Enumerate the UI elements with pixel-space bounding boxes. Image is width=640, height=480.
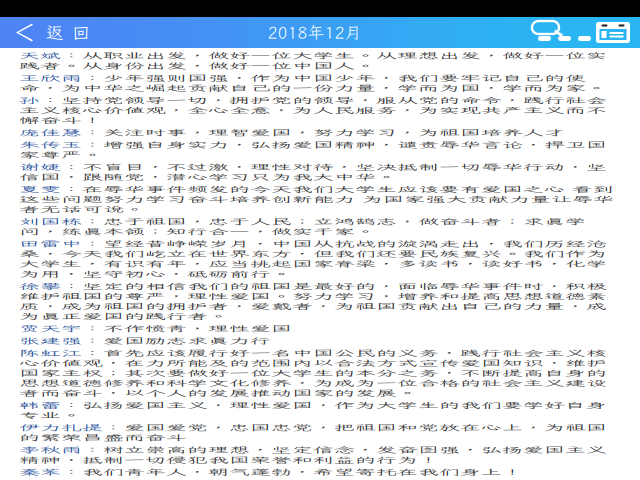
staticText: 王欣雨：少年强则国强，作为中国少年，我们要牢记自己的使命，为中华之崛起贡献自己的… [19, 111, 607, 165]
button[interactable]: 搜索 [530, 17, 592, 48]
staticText: 天斌：从职业出发，做好一位大学生。从理想出发，做好一位实践者。从身份出发，做好一… [19, 50, 607, 105]
staticText: 夏雯：在辱华事件频发的今天我们大学生应该要有爱国之心 看到这些问题努力学习奋斗培… [19, 413, 614, 480]
staticText: 庞佳慧：关注时事，理智爱国，努力学习，为祖国培养人才 [19, 259, 565, 286]
button[interactable]: 返回 [0, 17, 99, 48]
button[interactable]: 名片 [592, 17, 640, 48]
staticText: 朱传玉：增强自身实力，弘扬爱国精神，谴责辱华言论，捍卫国家尊严。 [19, 292, 607, 347]
staticText: 孙：坚持党领导一切，拥护党的领导，服从党的命令，践行社会主义核心价值观，全心全意… [19, 171, 607, 253]
staticText: 谢婕：不盲目，不过激，理性对待，坚决抵制一切辱华行动，坚信国，跟随党，潜心学习只… [19, 353, 607, 407]
staticText: 2018年12月 [267, 21, 361, 43]
staticText: 返回 [46, 21, 89, 44]
